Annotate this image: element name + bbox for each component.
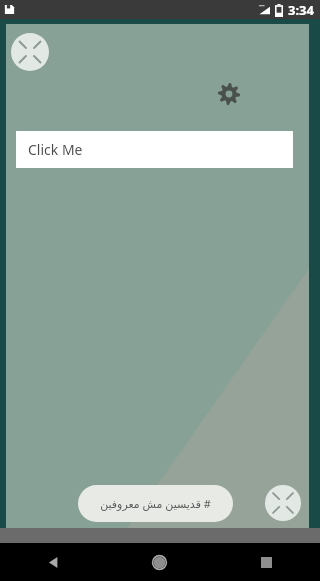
staticText: Click Me xyxy=(28,140,83,159)
button[interactable]: Back xyxy=(0,543,106,581)
button[interactable]: Recents xyxy=(213,543,320,581)
button[interactable]: Settings xyxy=(209,74,249,114)
staticText: قديسين مش معروفين # xyxy=(100,496,211,511)
button[interactable]: Home xyxy=(106,543,213,581)
button[interactable]: قديسين مش معروفين # xyxy=(78,485,233,522)
staticText: 3:34 xyxy=(288,1,314,19)
button[interactable]: Loading xyxy=(262,482,304,524)
button[interactable]: Click Me xyxy=(16,131,293,168)
button[interactable]: Loading xyxy=(8,30,52,74)
